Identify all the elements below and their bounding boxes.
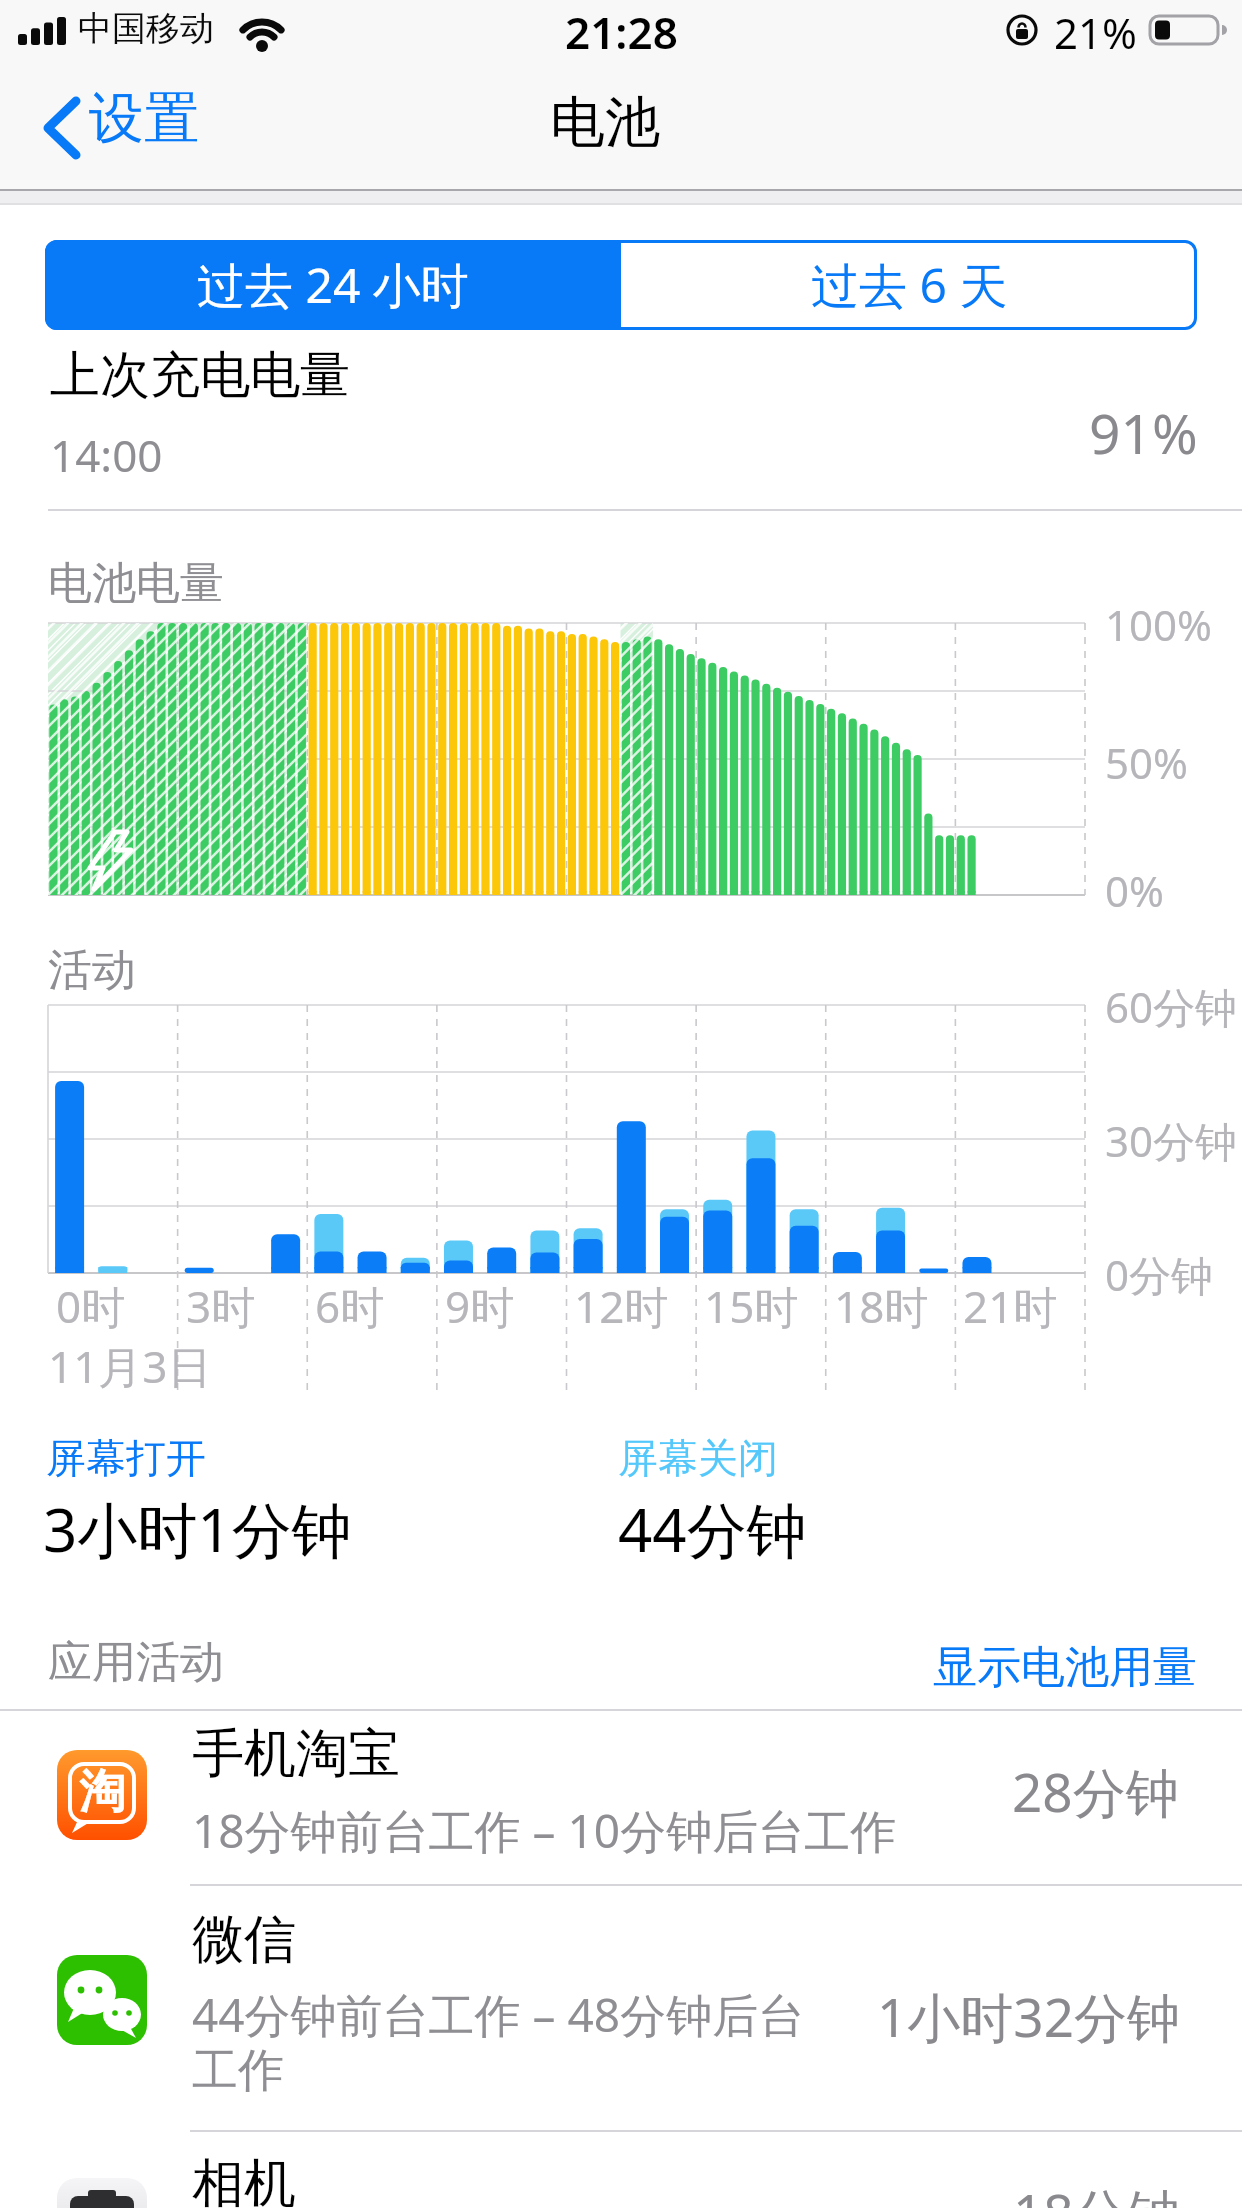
staticText: 设置 bbox=[89, 84, 199, 153]
staticText: 50% bbox=[1105, 734, 1188, 791]
button[interactable]: 微信 bbox=[0, 1885, 1242, 2131]
staticText: 0分钟 bbox=[1105, 1246, 1214, 1303]
staticText: 1小时32分钟 bbox=[877, 1980, 1180, 2052]
staticText: 100% bbox=[1105, 596, 1212, 653]
staticText: 电池电量 bbox=[48, 556, 224, 611]
staticText: 3时 bbox=[186, 1276, 256, 1336]
staticText: 3小时1分钟 bbox=[43, 1488, 352, 1570]
staticText: 21% bbox=[1054, 4, 1137, 61]
staticText: 30分钟 bbox=[1105, 1112, 1238, 1169]
staticText: 11月3日 bbox=[48, 1336, 212, 1396]
staticText: 过去 24 小时 bbox=[197, 252, 469, 318]
staticText: 屏幕打开 bbox=[46, 1433, 206, 1483]
staticText: 工作 bbox=[192, 2042, 284, 2100]
staticText: 屏幕关闭 bbox=[618, 1433, 778, 1483]
staticText: 0时 bbox=[56, 1276, 126, 1336]
button[interactable]: 显示电池用量 bbox=[817, 1632, 1197, 1702]
staticText: 18分钟 bbox=[1013, 2176, 1180, 2208]
staticText: 电池 bbox=[550, 88, 660, 157]
button[interactable]: 过去 6 天 bbox=[621, 240, 1197, 330]
staticText: 9时 bbox=[445, 1276, 515, 1336]
staticText: 28分钟 bbox=[1012, 1755, 1179, 1827]
staticText: 18分钟前台工作 – 10分钟后台工作 bbox=[192, 1799, 897, 1862]
button[interactable]: 相机 bbox=[0, 2131, 1242, 2208]
staticText: 18时 bbox=[834, 1276, 929, 1336]
staticText: 15时 bbox=[704, 1276, 799, 1336]
staticText: 6时 bbox=[315, 1276, 385, 1336]
staticText: 上次充电电量 bbox=[50, 344, 350, 407]
staticText: 中国移动 bbox=[78, 7, 214, 50]
staticText: 活动 bbox=[48, 943, 136, 998]
staticText: 显示电池用量 bbox=[933, 1640, 1197, 1695]
staticText: 淘 bbox=[79, 1763, 125, 1821]
staticText: 过去 6 天 bbox=[811, 252, 1008, 318]
staticText: 0% bbox=[1105, 862, 1164, 919]
staticText: 相机 bbox=[192, 2151, 296, 2208]
button[interactable]: 手机淘宝 bbox=[0, 1710, 1242, 1885]
staticText: 微信 bbox=[192, 1907, 296, 1973]
staticText: 44分钟前台工作 – 48分钟后台 bbox=[192, 1983, 805, 2046]
staticText: 21:28 bbox=[565, 2, 678, 62]
staticText: 60分钟 bbox=[1105, 978, 1238, 1035]
staticText: 12时 bbox=[574, 1276, 669, 1336]
button[interactable]: 过去 24 小时 bbox=[45, 240, 621, 330]
staticText: 手机淘宝 bbox=[192, 1721, 400, 1787]
staticText: 21时 bbox=[963, 1276, 1058, 1336]
staticText: 44分钟 bbox=[618, 1488, 807, 1570]
button[interactable]: 设置 bbox=[30, 80, 210, 164]
staticText: 14:00 bbox=[50, 425, 163, 485]
staticText: 91% bbox=[1089, 395, 1198, 470]
staticText: 应用活动 bbox=[48, 1635, 224, 1690]
